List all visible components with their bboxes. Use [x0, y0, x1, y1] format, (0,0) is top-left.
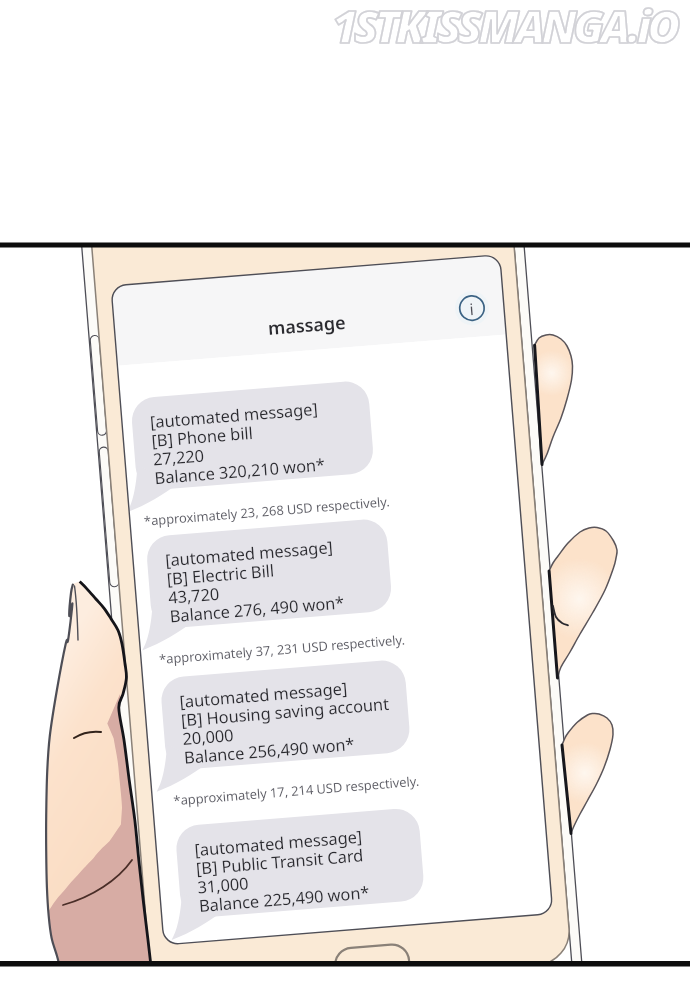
button[interactable]: Comic panel: a hand holding a phone show…	[0, 0, 690, 1000]
